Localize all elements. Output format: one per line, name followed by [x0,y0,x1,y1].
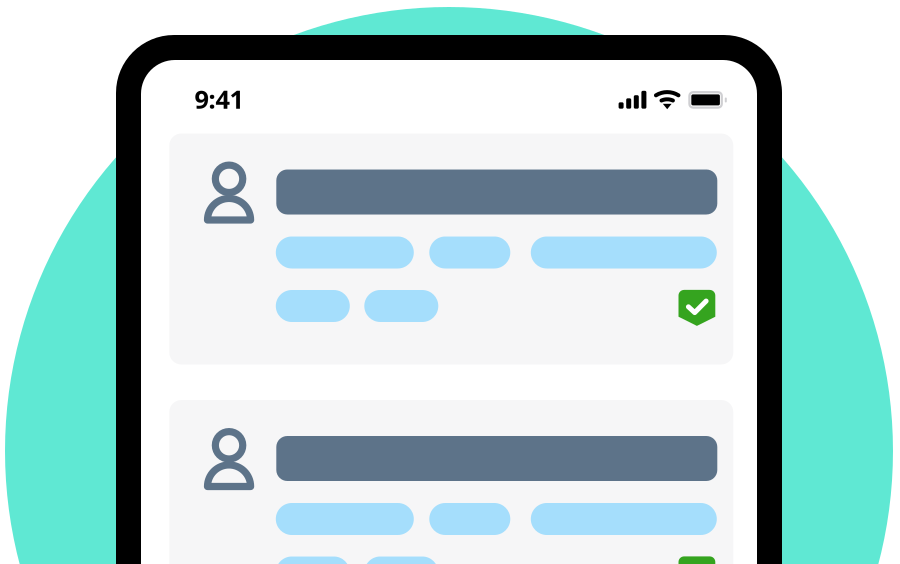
button[interactable]: Verified contact [169,133,733,364]
button[interactable]: Verified contact [169,400,733,564]
staticText: 9:41 [194,82,243,116]
